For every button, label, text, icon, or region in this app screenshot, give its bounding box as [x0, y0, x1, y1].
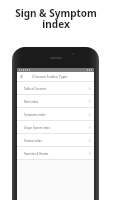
button[interactable]: Main index	[17, 95, 94, 107]
staticText: Organ System index	[24, 126, 51, 130]
staticText: Sign & Symptom index	[15, 6, 97, 31]
button[interactable]: Back	[17, 72, 26, 81]
staticText: Disease index	[24, 139, 42, 143]
staticText: Main index	[24, 100, 39, 104]
staticText: Symptoms index	[24, 113, 46, 117]
staticText: Table of Contents	[24, 87, 47, 91]
button[interactable]: Symptoms index	[17, 108, 94, 120]
button[interactable]: Organ System index	[17, 121, 94, 133]
button[interactable]: Disease index	[17, 134, 94, 146]
button[interactable]: Favorites & Review	[17, 147, 94, 159]
button[interactable]: Table of Contents	[17, 82, 94, 94]
staticText: Favorites & Review	[24, 152, 49, 156]
staticText: Choose Index Type	[32, 74, 68, 79]
